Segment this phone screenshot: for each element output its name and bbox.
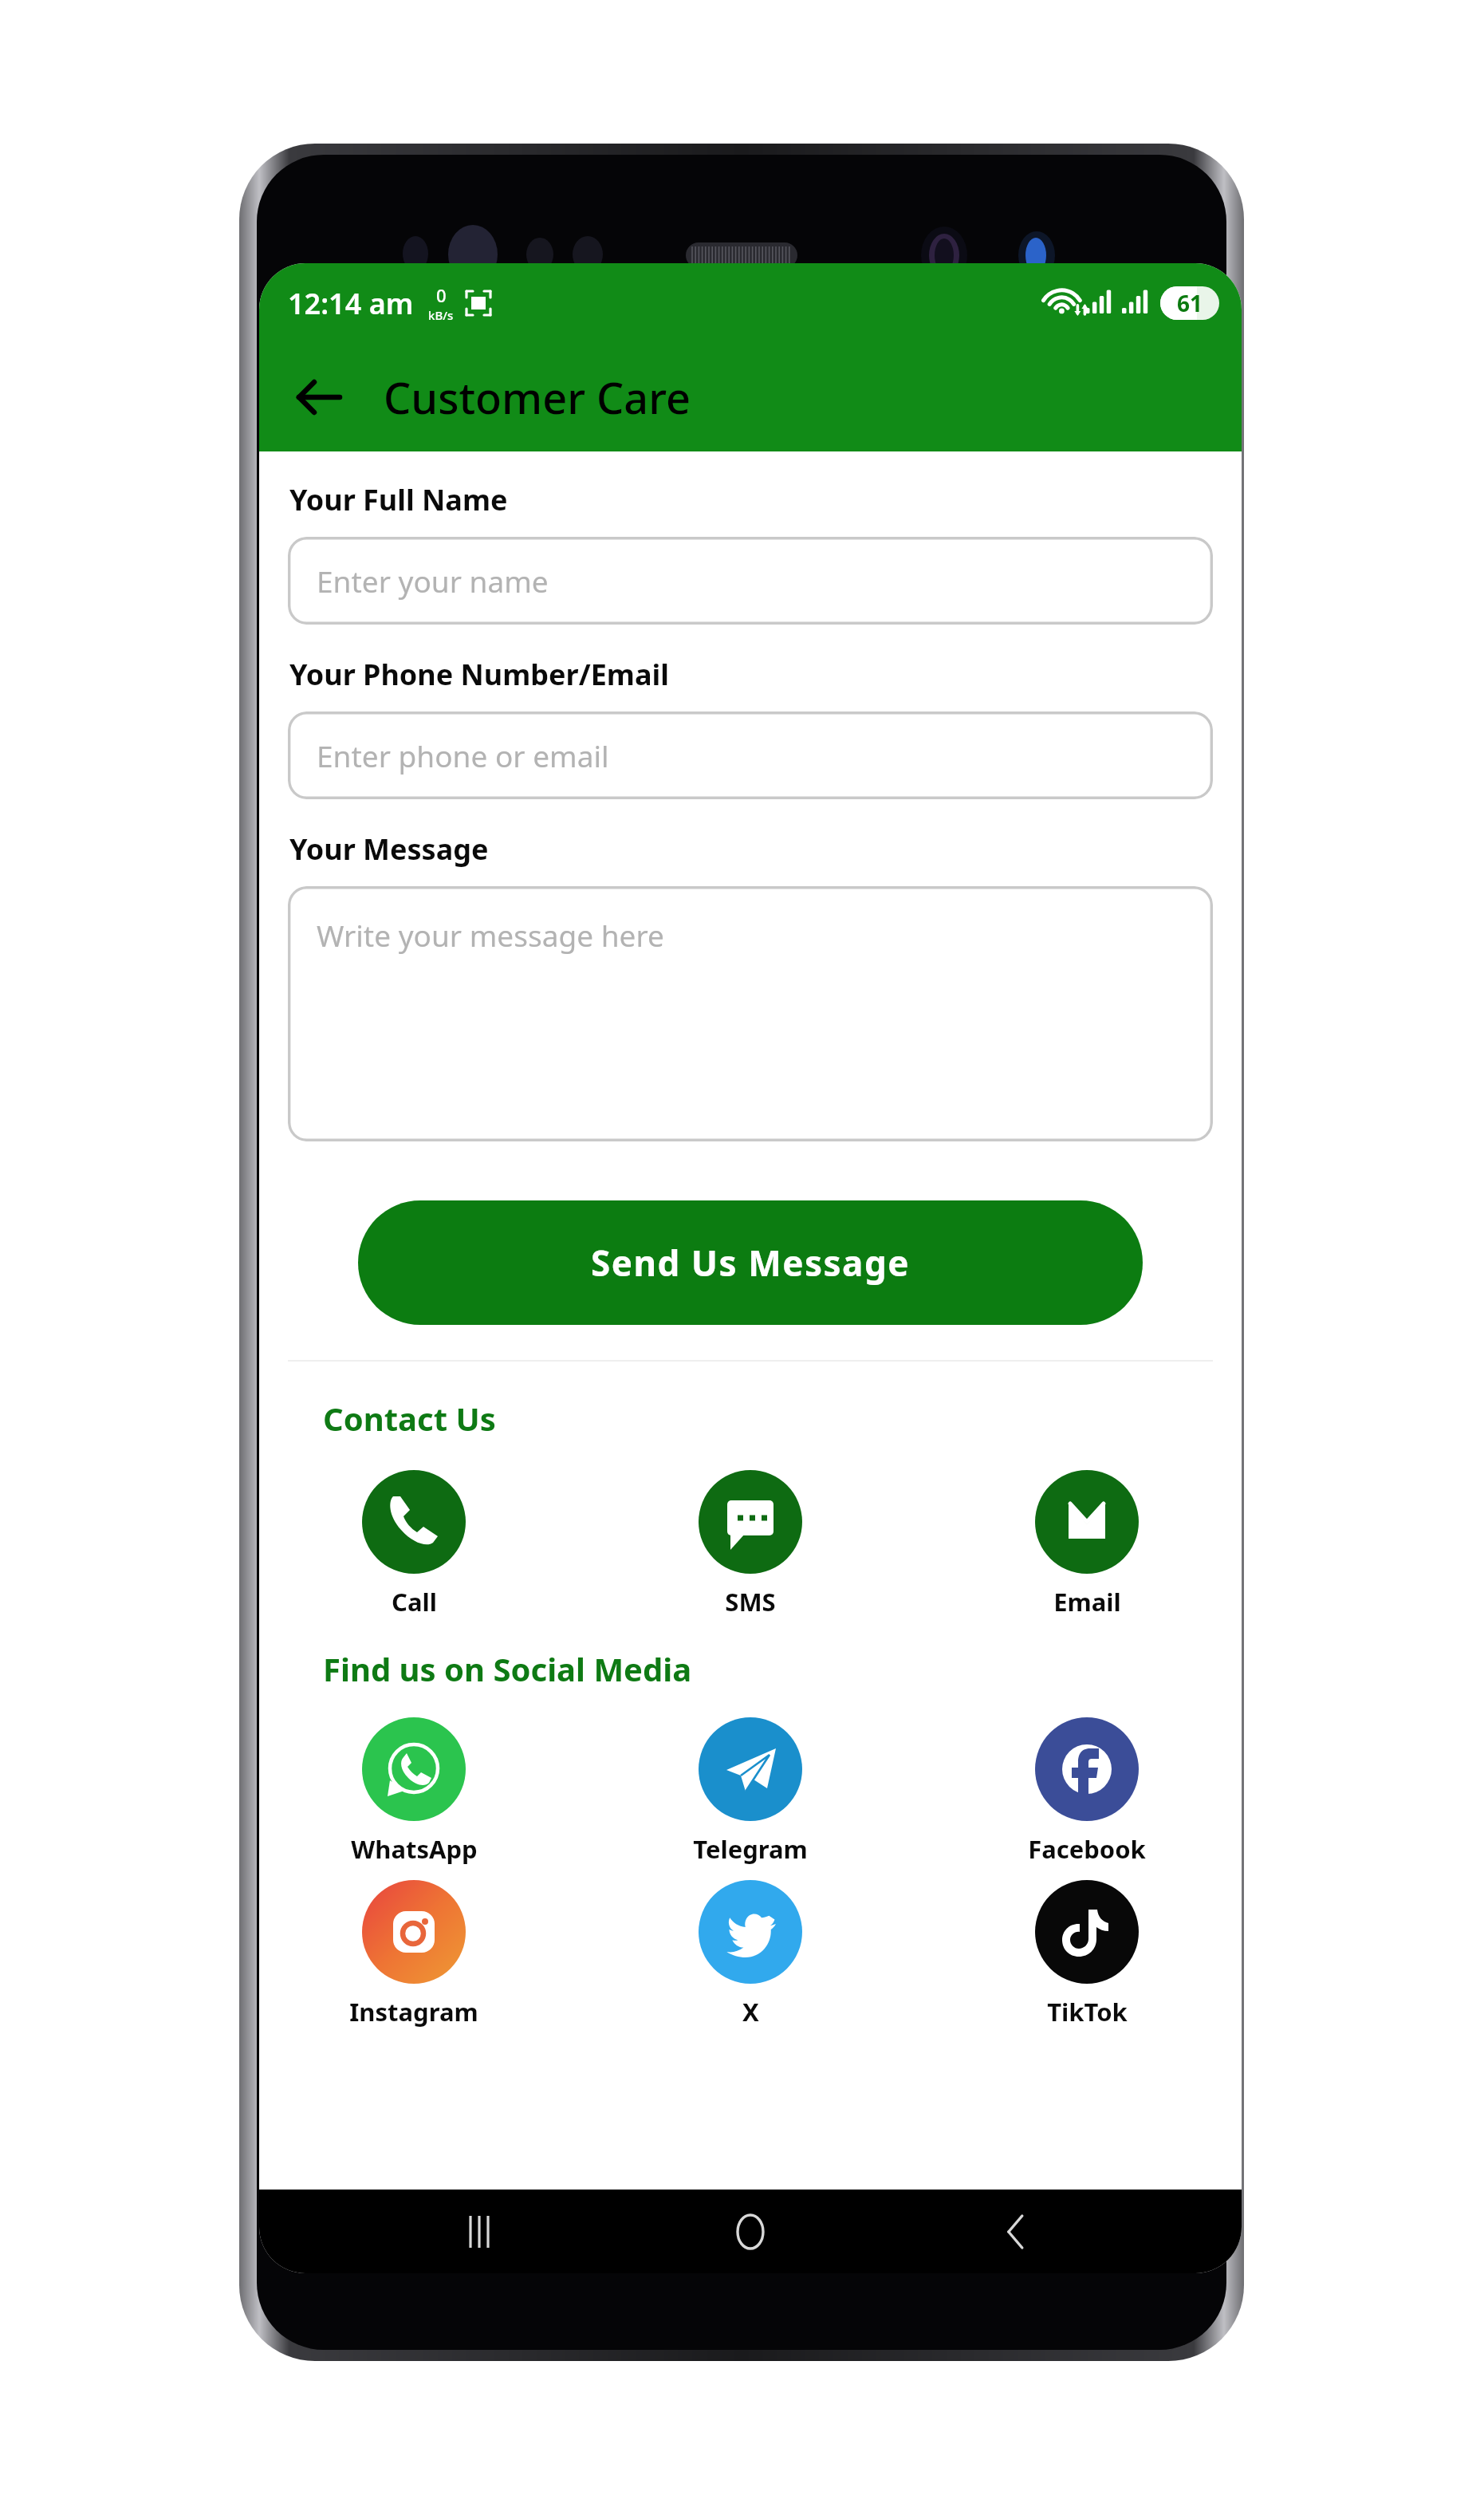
staticText: Write your message here xyxy=(317,915,664,955)
staticText: Facebook xyxy=(1028,1832,1146,1866)
staticText: Enter phone or email xyxy=(317,735,609,775)
button[interactable]: SMS xyxy=(663,1470,838,1618)
staticText: Contact Us xyxy=(323,1397,496,1440)
staticText: kB/s xyxy=(428,307,454,323)
button[interactable]: WhatsApp xyxy=(326,1717,502,1866)
button[interactable]: X xyxy=(663,1880,838,2028)
staticText: Instagram xyxy=(349,1995,478,2028)
button[interactable]: Write your message here xyxy=(288,886,1213,1141)
staticText: Call xyxy=(392,1585,437,1618)
staticText: WhatsApp xyxy=(351,1832,478,1866)
staticText: Find us on Social Media xyxy=(323,1647,692,1690)
button[interactable]: Back xyxy=(280,359,356,436)
button[interactable]: Back xyxy=(974,2190,1062,2273)
staticText: Enter your name xyxy=(317,561,549,601)
staticText: 12:14 am xyxy=(288,284,414,323)
button[interactable]: Telegram xyxy=(663,1717,838,1866)
button[interactable]: Home xyxy=(707,2190,794,2273)
staticText: X xyxy=(742,1995,759,2028)
staticText: Your Message xyxy=(289,830,489,869)
staticText: TikTok xyxy=(1047,1995,1128,2028)
staticText: Your Full Name xyxy=(289,480,508,519)
button[interactable]: Enter phone or email xyxy=(288,711,1213,799)
staticText: 0 xyxy=(436,283,447,307)
staticText: 61 xyxy=(1177,288,1203,318)
staticText: Customer Care xyxy=(384,368,691,427)
button[interactable]: Instagram xyxy=(326,1880,502,2028)
button[interactable]: Call xyxy=(326,1470,502,1618)
staticText: Your Phone Number/Email xyxy=(289,655,669,694)
button[interactable]: Send Us Message xyxy=(358,1200,1143,1325)
button[interactable]: Recent apps xyxy=(439,2190,527,2273)
button[interactable]: Enter your name xyxy=(288,537,1213,625)
button[interactable]: Facebook xyxy=(999,1717,1175,1866)
staticText: Telegram xyxy=(693,1832,808,1866)
button[interactable]: Email xyxy=(999,1470,1175,1618)
staticText: SMS xyxy=(725,1585,776,1618)
staticText: Send Us Message xyxy=(591,1239,911,1287)
button[interactable]: TikTok xyxy=(999,1880,1175,2028)
staticText: Email xyxy=(1053,1585,1121,1618)
